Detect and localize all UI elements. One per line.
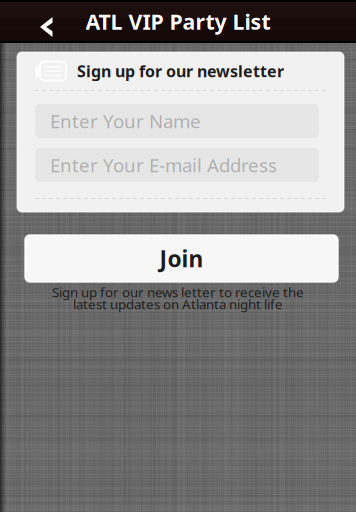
button[interactable]: Back xyxy=(0,0,60,43)
staticText: Enter Your E-mail Address xyxy=(50,153,277,177)
staticText: Join xyxy=(159,243,203,273)
staticText: Enter Your Name xyxy=(50,109,201,133)
staticText: Sign up for our news letter to receive t… xyxy=(52,283,304,301)
button[interactable]: Join xyxy=(25,235,338,282)
button[interactable]: Enter Your Name xyxy=(35,104,319,138)
staticText: ATL VIP Party List xyxy=(85,7,270,36)
staticText: Sign up for our newsletter xyxy=(77,60,284,82)
button[interactable]: Enter Your E-mail Address xyxy=(35,148,319,182)
staticText: latest updates on Atlanta night life xyxy=(73,295,283,313)
